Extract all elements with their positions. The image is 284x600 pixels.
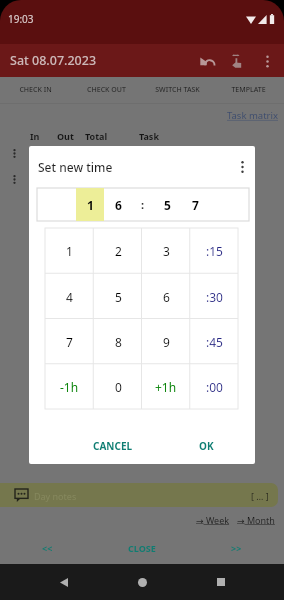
button[interactable]: SWITCH TASK: [142, 77, 213, 103]
button[interactable]: 1: [76, 188, 104, 221]
button[interactable]: 6: [142, 274, 190, 319]
staticText: In: [30, 130, 40, 142]
button[interactable]: 4: [45, 274, 94, 319]
button[interactable]: <<: [0, 538, 94, 558]
staticText: <<: [42, 542, 53, 554]
staticText: :00: [206, 379, 223, 395]
staticText: 6: [115, 197, 122, 213]
staticText: 5: [164, 197, 171, 213]
button[interactable]: 9: [142, 319, 190, 364]
button[interactable]: 1: [45, 228, 94, 274]
staticText: OK: [199, 439, 214, 453]
staticText: CANCEL: [93, 439, 133, 453]
staticText: 6: [163, 289, 170, 305]
button[interactable]: 2: [94, 228, 142, 274]
button[interactable]: Row options: [0, 162, 284, 182]
button[interactable]: Home: [127, 567, 157, 597]
button[interactable]: 0: [94, 364, 142, 409]
staticText: 4: [66, 289, 73, 305]
staticText: :45: [206, 334, 223, 350]
button[interactable]: OK: [189, 431, 224, 461]
staticText: :: [141, 197, 145, 212]
button[interactable]: 3: [142, 228, 190, 274]
button[interactable]: :30: [190, 274, 238, 319]
staticText: CHECK IN: [19, 85, 52, 95]
staticText: >>: [231, 542, 242, 554]
button[interactable]: :45: [190, 319, 238, 364]
button[interactable]: :15: [190, 228, 238, 274]
button[interactable]: Swipe actions: [222, 46, 252, 76]
staticText: :15: [206, 243, 223, 259]
button[interactable]: → Week: [196, 514, 230, 526]
button[interactable]: Day notes: [0, 483, 278, 507]
button[interactable]: CANCEL: [83, 431, 143, 461]
button[interactable]: Row options: [0, 142, 284, 162]
button[interactable]: → Month: [237, 514, 275, 526]
staticText: 2: [115, 243, 122, 259]
other: Row options: [10, 174, 18, 184]
button[interactable]: 5: [153, 188, 181, 221]
button[interactable]: CLOSE: [94, 538, 189, 558]
staticText: +1h: [155, 379, 177, 395]
staticText: -1h: [60, 379, 79, 395]
staticText: 3: [163, 243, 170, 259]
staticText: 0: [115, 379, 122, 395]
staticText: 19:03: [8, 12, 34, 26]
staticText: TEMPLATE: [231, 85, 266, 95]
button[interactable]: Undo: [192, 46, 222, 76]
button[interactable]: -1h: [45, 364, 94, 409]
staticText: 7: [192, 197, 199, 213]
staticText: 5: [115, 289, 122, 305]
button[interactable]: +1h: [142, 364, 190, 409]
staticText: Total: [85, 130, 108, 142]
staticText: 1: [66, 243, 73, 259]
button[interactable]: TEMPLATE: [213, 77, 284, 103]
staticText: Set new time: [38, 159, 113, 175]
staticText: :30: [206, 289, 223, 305]
staticText: CHECK OUT: [87, 85, 126, 95]
staticText: 7: [66, 334, 73, 350]
other: Row options: [10, 148, 18, 158]
staticText: 8: [115, 334, 122, 350]
button[interactable]: More options: [252, 46, 282, 76]
button[interactable]: CHECK IN: [0, 77, 71, 103]
staticText: 1: [87, 197, 94, 213]
button[interactable]: Back: [49, 567, 79, 597]
staticText: [ … ]: [251, 490, 269, 502]
staticText: Out: [57, 130, 74, 142]
button[interactable]: :00: [190, 364, 238, 409]
button[interactable]: CHECK OUT: [71, 77, 142, 103]
button[interactable]: >>: [189, 538, 284, 558]
staticText: Sat 08.07.2023: [10, 52, 97, 69]
button[interactable]: 7: [181, 188, 209, 221]
button[interactable]: 7: [45, 319, 94, 364]
staticText: Task: [139, 130, 159, 142]
staticText: 9: [163, 334, 170, 350]
button[interactable]: 8: [94, 319, 142, 364]
staticText: Day notes: [34, 490, 77, 502]
button[interactable]: 6: [104, 188, 132, 221]
button[interactable]: Task matrix: [227, 109, 278, 122]
button[interactable]: 5: [94, 274, 142, 319]
button[interactable]: Recent apps: [206, 567, 236, 597]
staticText: CLOSE: [128, 542, 156, 554]
staticText: SWITCH TASK: [155, 85, 200, 95]
button[interactable]: Dialog options: [229, 154, 255, 180]
